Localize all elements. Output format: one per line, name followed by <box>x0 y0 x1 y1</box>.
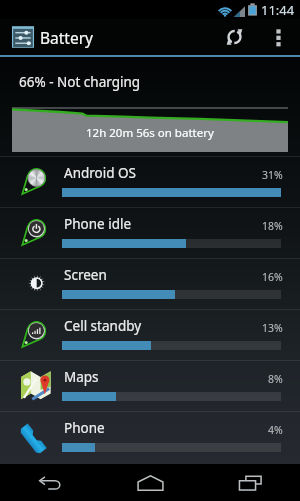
staticText: Android OS <box>64 164 136 182</box>
button[interactable]: Screen <box>0 259 300 309</box>
button[interactable]: Refresh <box>212 19 256 55</box>
staticText: 66% - Not charging <box>19 73 141 91</box>
staticText: Phone <box>64 419 105 437</box>
button[interactable]: Maps <box>0 361 300 411</box>
staticText: 16% <box>262 270 283 284</box>
button[interactable]: Home <box>100 464 200 501</box>
button[interactable]: Settings <box>11 25 35 49</box>
staticText: 18% <box>262 219 283 233</box>
button[interactable]: More options <box>256 19 300 55</box>
button[interactable]: Phone <box>0 412 300 462</box>
button[interactable]: Back <box>0 464 100 501</box>
staticText: Battery <box>40 27 94 48</box>
button[interactable]: Recent apps <box>200 464 300 501</box>
staticText: 4% <box>268 423 283 437</box>
staticText: 31% <box>262 168 283 182</box>
button[interactable]: Cell standby <box>0 310 300 360</box>
staticText: Maps <box>64 368 99 386</box>
staticText: 8% <box>268 372 283 386</box>
button[interactable]: Android OS <box>0 157 300 207</box>
staticText: Screen <box>64 266 107 284</box>
staticText: Phone idle <box>64 215 132 233</box>
staticText: 13% <box>262 321 283 335</box>
staticText: 12h 20m 56s on battery <box>86 125 214 141</box>
staticText: 11:44 <box>261 1 295 19</box>
button[interactable]: Phone idle <box>0 208 300 258</box>
staticText: Cell standby <box>64 317 142 335</box>
